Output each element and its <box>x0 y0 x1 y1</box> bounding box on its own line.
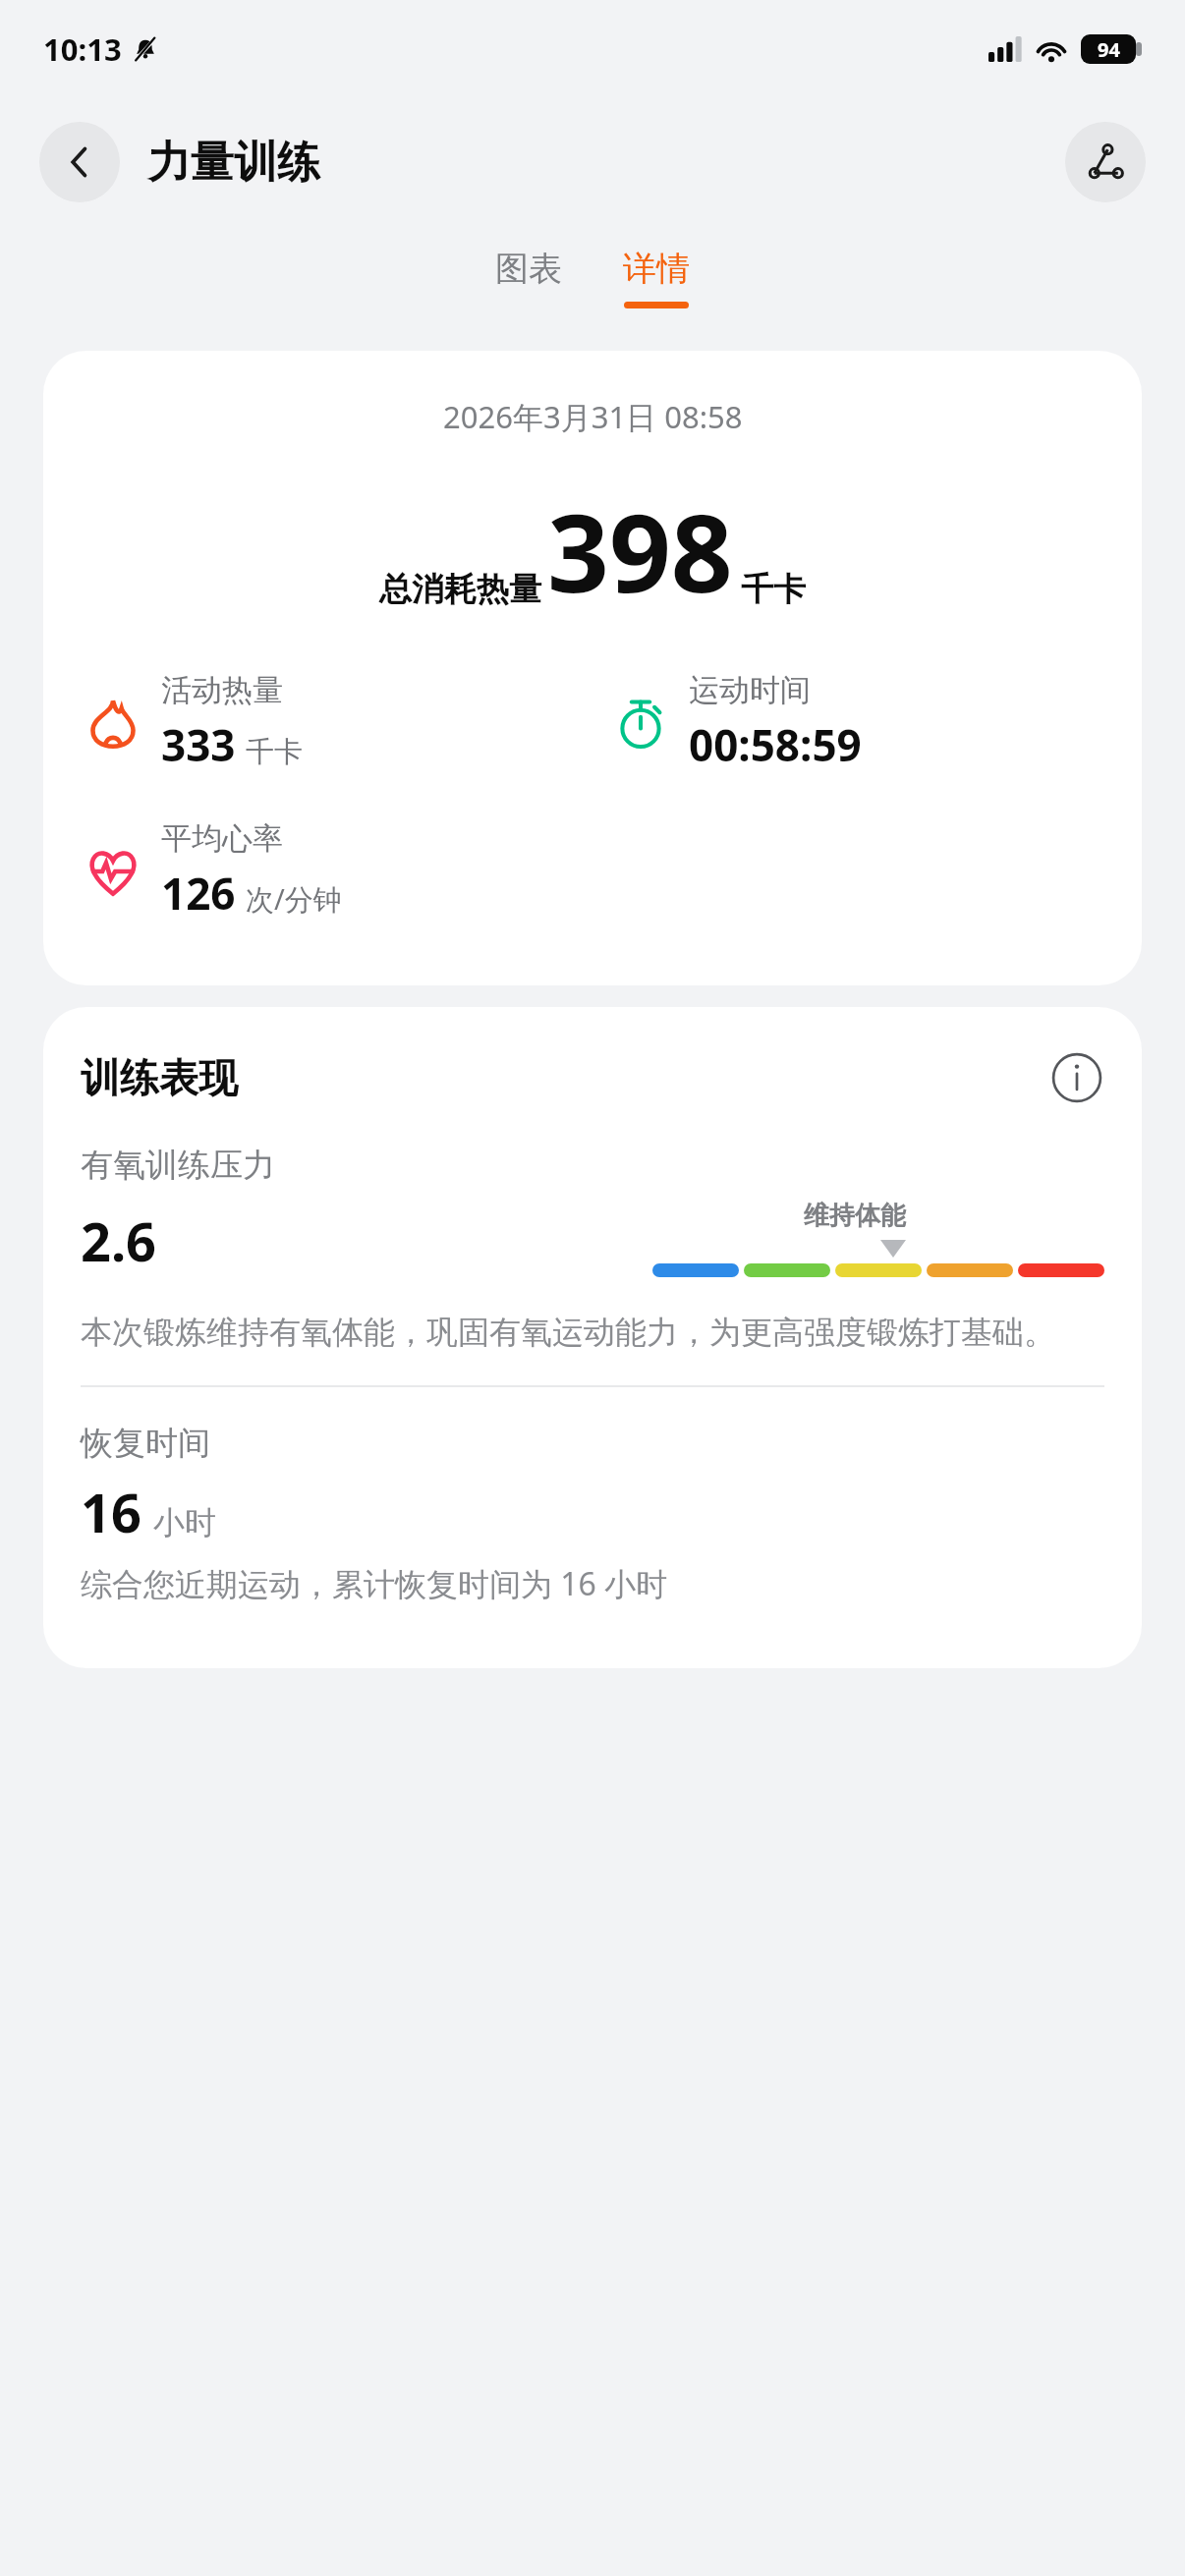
staticText: 333 <box>161 715 236 774</box>
staticText: 00:58:59 <box>689 715 862 774</box>
staticText: 小时 <box>153 1503 216 1542</box>
staticText: 图表 <box>495 248 562 290</box>
button[interactable]: Share <box>1065 122 1146 202</box>
staticText: 398 <box>547 476 733 624</box>
staticText: 恢复时间 <box>81 1423 210 1464</box>
staticText: 有氧训练压力 <box>81 1145 275 1186</box>
button[interactable]: 图表 <box>478 240 580 298</box>
button[interactable]: 详情 <box>605 240 707 316</box>
staticText: 千卡 <box>246 734 303 770</box>
button[interactable]: Back <box>39 122 120 202</box>
staticText: 平均心率 <box>161 819 283 858</box>
button[interactable]: 2026年3月31日 08:58 <box>43 351 1142 985</box>
staticText: 运动时间 <box>689 671 811 709</box>
staticText: 次/分钟 <box>246 879 342 919</box>
staticText: 16 <box>81 1476 141 1548</box>
staticText: 2.6 <box>81 1204 156 1277</box>
staticText: 总消耗热量 <box>379 569 541 610</box>
staticText: 2026年3月31日 08:58 <box>443 396 743 437</box>
staticText: 94 <box>1098 36 1120 63</box>
staticText: 综合您近期运动，累计恢复时间为 16 小时 <box>81 1562 668 1605</box>
staticText: 10:13 <box>43 28 122 70</box>
staticText: 千卡 <box>741 569 806 610</box>
button[interactable]: Info <box>1049 1050 1104 1105</box>
staticText: 活动热量 <box>161 671 283 709</box>
staticText: 本次锻炼维持有氧体能，巩固有氧运动能力，为更高强度锻炼打基础。 <box>81 1313 1055 1352</box>
staticText: 训练表现 <box>81 1053 238 1102</box>
staticText: 126 <box>161 864 236 923</box>
staticText: 维持体能 <box>804 1200 906 1232</box>
staticText: 力量训练 <box>147 136 320 190</box>
staticText: 详情 <box>623 248 690 290</box>
